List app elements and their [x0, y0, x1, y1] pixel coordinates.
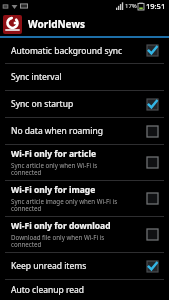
- staticText: 19:51: [146, 1, 166, 11]
- button[interactable]: Sync on startup: [0, 91, 169, 117]
- staticText: Wi-Fi only for download: [11, 220, 111, 232]
- button[interactable]: Wi-Fi only for article: [0, 145, 169, 180]
- staticText: Auto cleanup read: [11, 284, 159, 296]
- button[interactable]: Automatic background sync: [0, 38, 169, 63]
- button[interactable]: Keep unread items: [0, 253, 169, 279]
- staticText: Wi-Fi only for image: [11, 184, 96, 196]
- button[interactable]: Sync interval: [0, 64, 169, 90]
- button[interactable]: Wi-Fi only for download: [0, 217, 169, 252]
- staticText: WorldNews: [28, 17, 85, 31]
- staticText: Sync interval: [11, 71, 159, 83]
- staticText: Wi-Fi only for article: [11, 148, 97, 160]
- staticText: Sync on startup: [11, 98, 146, 110]
- staticText: Sync article image only when Wi-Fi is co…: [11, 197, 118, 213]
- button[interactable]: No data when roaming: [0, 118, 169, 144]
- staticText: 17%: [125, 2, 137, 10]
- staticText: Sync article only when Wi-Fi is connecte…: [11, 161, 98, 177]
- staticText: Automatic background sync: [11, 45, 146, 57]
- staticText: Keep unread items: [11, 260, 146, 272]
- button[interactable]: Wi-Fi only for image: [0, 181, 169, 216]
- button[interactable]: Auto cleanup read: [0, 280, 169, 300]
- staticText: Download file only when Wi-Fi is connect…: [11, 233, 105, 249]
- staticText: No data when roaming: [11, 125, 146, 137]
